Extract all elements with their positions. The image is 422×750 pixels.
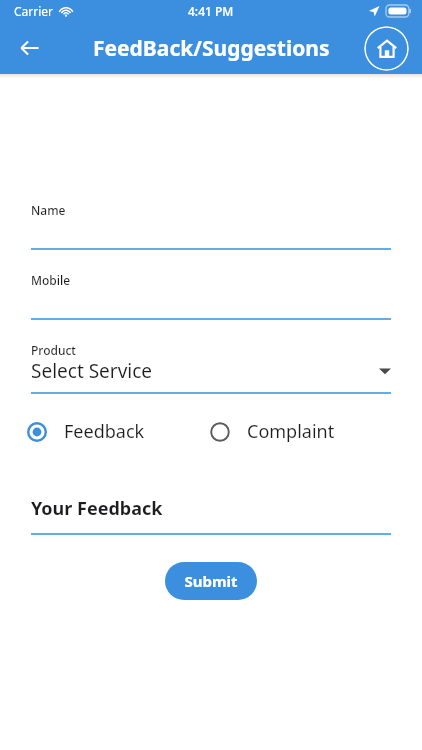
staticText: 4:41 PM	[188, 3, 234, 19]
button[interactable]: Your Feedback	[31, 493, 391, 523]
staticText: Carrier	[14, 3, 54, 19]
staticText: FeedBack/Suggestions	[93, 34, 330, 63]
staticText: Select Service	[31, 358, 153, 384]
staticText: Mobile	[31, 272, 71, 288]
staticText: Your Feedback	[31, 496, 163, 521]
button[interactable]: Home	[364, 26, 409, 71]
staticText: Name	[31, 202, 66, 218]
staticText: Product	[31, 342, 76, 358]
staticText: Feedback	[64, 419, 145, 444]
button[interactable]: Feedback	[23, 417, 149, 446]
staticText: Complaint	[247, 419, 335, 444]
button[interactable]: Select Service	[31, 354, 391, 388]
button[interactable]: Back	[8, 26, 52, 70]
button[interactable]: Submit	[165, 562, 257, 600]
staticText: Submit	[184, 571, 238, 591]
button[interactable]: Complaint	[206, 417, 339, 446]
